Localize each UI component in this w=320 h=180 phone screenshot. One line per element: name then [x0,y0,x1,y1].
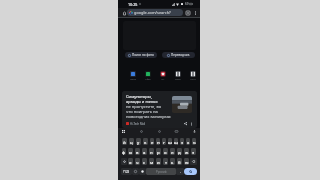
staticText: 10:25 [128,2,138,7]
staticText: ю [185,159,189,165]
button[interactable]: п [149,148,154,155]
staticText: о [164,149,167,155]
staticText: н [157,139,160,145]
staticText: Hi-Tech Mail [130,122,146,126]
staticText: п [150,149,153,155]
button[interactable]: ы [128,148,133,155]
button[interactable]: Маркет [130,71,136,81]
staticText: а [143,149,146,155]
button[interactable]: л [170,148,175,155]
staticText: ш [168,139,172,145]
staticText: б [178,159,181,165]
button[interactable]: ш [168,138,172,145]
button[interactable]: Hi-Tech [160,71,166,81]
button[interactable]: Сбер [145,71,151,81]
button[interactable]: Backspace [190,158,197,165]
button[interactable]: More options [193,10,198,15]
button[interactable]: а [142,148,147,155]
button[interactable]: э [191,148,196,155]
button[interactable]: м [149,158,154,165]
button[interactable]: Home [121,10,127,16]
button[interactable]: Emoji [132,168,139,175]
staticText: ъ [193,139,196,145]
button[interactable]: ж [184,148,189,155]
staticText: л [171,149,174,155]
staticText: ф [122,149,126,155]
button[interactable]: Voice input [192,129,197,134]
button[interactable]: ч [135,158,140,165]
button[interactable]: ф [122,148,126,155]
staticText: . [180,169,181,174]
button[interactable]: и [156,158,161,165]
staticText: г [163,139,165,145]
staticText: Поиск по фото [132,53,154,57]
button[interactable]: Tabs [185,10,191,16]
button[interactable]: Поиск по фото [125,52,157,58]
staticText: с [143,159,146,165]
staticText: Hi-Tech [160,78,166,81]
staticText: и [157,159,160,165]
staticText: щ [174,139,178,145]
staticText: в [136,149,139,155]
button[interactable]: в [135,148,140,155]
button[interactable]: т [163,158,168,165]
button[interactable]: д [177,148,182,155]
staticText: аркады и гонки: [126,99,158,104]
button[interactable]: Переводчик [162,52,195,58]
staticText: я [129,159,132,165]
button[interactable]: ц [129,138,134,145]
staticText: х [187,139,190,145]
button[interactable]: г [162,138,166,145]
button[interactable]: Sticker [157,129,162,134]
staticText: новогодних каникулах [126,114,171,119]
button[interactable]: у [136,138,141,145]
button[interactable]: google.com/search?q=игры+на… [127,9,183,16]
staticText: р [157,149,160,155]
button[interactable]: Русский [146,168,176,175]
button[interactable]: Comma [139,168,146,175]
button[interactable]: Search [184,168,197,175]
button[interactable]: ъ [192,138,196,145]
button[interactable]: Share [183,121,188,126]
button[interactable]: н [156,138,160,145]
staticText: не пропустите, во [126,104,162,109]
staticText: ч [136,159,139,165]
button[interactable]: е [150,138,154,145]
button[interactable]: р [156,148,161,155]
staticText: й [123,139,126,145]
staticText: з [181,139,184,145]
staticText: к [144,139,147,145]
button[interactable]: з [180,138,184,145]
button[interactable]: Shift [121,158,127,165]
button[interactable]: о [163,148,168,155]
button[interactable]: Почта [190,71,196,81]
staticText: Русский [156,170,167,174]
staticText: Маркет [130,78,136,81]
button[interactable]: Settings [174,129,179,134]
button[interactable]: й [122,138,127,145]
staticText: ы [129,149,133,155]
button[interactable]: ?123 [121,168,132,175]
staticText: Симуляторы, [126,94,152,99]
button[interactable]: Clipboard [121,129,126,134]
button[interactable]: Симуляторы, [122,91,197,128]
staticText: у [137,139,140,145]
button[interactable]: щ [174,138,178,145]
staticText: Почта [190,78,196,81]
staticText: ?123 [123,170,130,174]
button[interactable]: GIF [139,129,144,134]
button[interactable]: More [189,121,194,126]
staticText: Переводчик [171,53,190,57]
staticText: д [178,149,181,155]
button[interactable]: б [177,158,182,165]
staticText: ж [185,149,189,155]
staticText: е [151,139,154,145]
button[interactable]: ь [170,158,175,165]
button[interactable]: с [142,158,147,165]
button[interactable]: Вконт [175,71,181,81]
button[interactable]: к [143,138,148,145]
button[interactable]: х [186,138,190,145]
button[interactable]: . [176,168,184,175]
button[interactable]: ю [184,158,189,165]
button[interactable]: я [128,158,133,165]
